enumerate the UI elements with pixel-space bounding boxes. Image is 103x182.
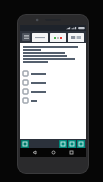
button[interactable]: Next bbox=[77, 140, 85, 148]
button[interactable]: Traffic lights bbox=[50, 33, 66, 42]
button[interactable]: Back bbox=[30, 148, 39, 157]
button[interactable] bbox=[23, 87, 83, 96]
button[interactable] bbox=[23, 96, 83, 105]
button[interactable]: Flag bbox=[68, 140, 76, 148]
button[interactable] bbox=[23, 69, 83, 78]
button[interactable]: Home bbox=[49, 148, 58, 157]
button[interactable]: Menu bbox=[22, 33, 30, 41]
button[interactable]: Previous bbox=[59, 140, 67, 148]
button[interactable]: Grid view bbox=[21, 140, 29, 148]
button[interactable]: Settings bbox=[68, 33, 84, 42]
button[interactable]: Option one bbox=[32, 33, 48, 42]
button[interactable] bbox=[23, 78, 83, 87]
button[interactable]: Recent apps bbox=[67, 148, 76, 157]
